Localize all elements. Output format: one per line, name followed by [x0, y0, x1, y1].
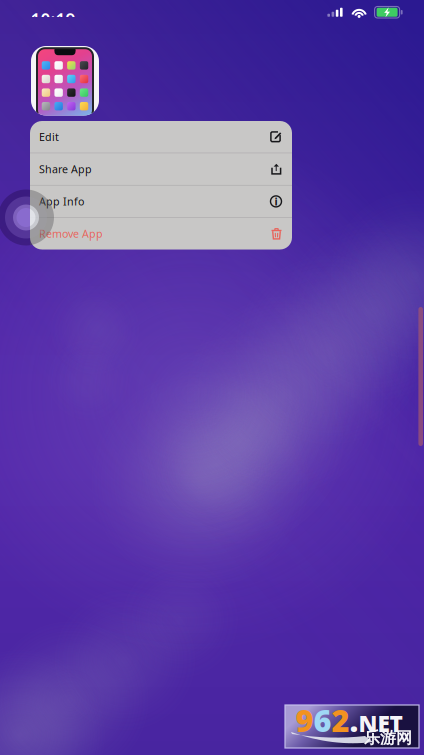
staticText: 10:19 — [30, 8, 75, 31]
staticText: 乐游网 — [364, 728, 412, 748]
staticText: Share App — [39, 162, 92, 176]
staticText: 9 — [295, 700, 313, 740]
staticText: Edit — [39, 130, 59, 144]
staticText: Remove App — [39, 227, 103, 241]
button[interactable]: Edit — [30, 121, 292, 153]
staticText: NET — [358, 708, 402, 738]
staticText: 6 — [313, 700, 331, 740]
button[interactable]: App Info — [30, 186, 292, 217]
staticText: App Info — [39, 194, 84, 208]
staticText: 2 — [331, 700, 349, 740]
button[interactable]: Share App — [30, 153, 292, 185]
staticText: . — [349, 700, 358, 740]
button[interactable]: Remove App — [30, 218, 292, 249]
staticText: i — [274, 194, 277, 208]
